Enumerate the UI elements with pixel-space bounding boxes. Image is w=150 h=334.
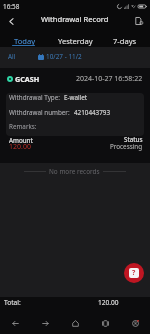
staticText: Withdrawal Type: xyxy=(9,93,60,102)
button[interactable]: Account xyxy=(120,312,150,334)
button[interactable]: Back xyxy=(2,12,20,30)
staticText: Processing xyxy=(110,142,143,151)
staticText: E-wallet xyxy=(64,93,88,102)
staticText: 120.00 xyxy=(9,142,31,152)
staticText: Withdrawal number: xyxy=(9,108,70,117)
button[interactable]: 10/27 - 11/2 xyxy=(36,50,84,63)
button[interactable]: 7-days xyxy=(100,36,150,47)
staticText: ? xyxy=(132,268,136,278)
staticText: Today xyxy=(14,36,36,46)
staticText: Total: xyxy=(4,298,21,307)
staticText: Remarks: xyxy=(9,122,37,131)
staticText: All xyxy=(8,52,16,61)
staticText: 16:58 xyxy=(3,2,20,11)
button[interactable]: GCASH xyxy=(0,68,150,163)
button[interactable]: Today xyxy=(0,36,50,47)
staticText: 2024-10-27 16:58:22 xyxy=(76,74,143,84)
button[interactable]: Help xyxy=(124,263,144,283)
staticText: Amount xyxy=(9,136,33,145)
staticText: 4210443793 xyxy=(74,108,111,117)
button[interactable]: Back xyxy=(0,312,30,334)
staticText: 120.00 xyxy=(98,298,119,307)
staticText: Yesterday xyxy=(58,36,93,46)
button[interactable]: Customer service xyxy=(130,12,148,30)
staticText: 7-days xyxy=(113,36,137,46)
staticText: No more records xyxy=(49,167,100,176)
button[interactable]: All xyxy=(4,50,20,63)
button[interactable]: Yesterday xyxy=(50,36,100,47)
button[interactable]: Forward xyxy=(30,312,60,334)
staticText: GCASH xyxy=(15,74,40,84)
button[interactable]: Home xyxy=(60,312,90,334)
staticText: Status xyxy=(124,135,143,144)
staticText: Withdrawal Record xyxy=(41,14,109,24)
staticText: 10/27 - 11/2 xyxy=(46,52,82,61)
button[interactable]: Tabs xyxy=(90,312,120,334)
